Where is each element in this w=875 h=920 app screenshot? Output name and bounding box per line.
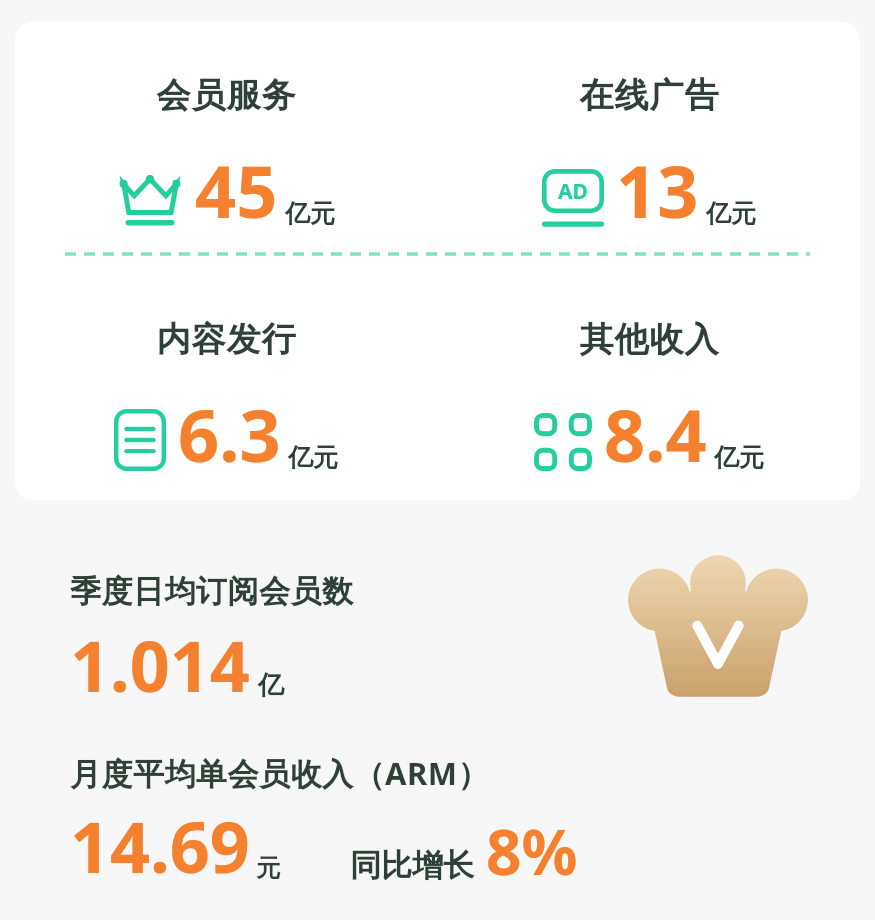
other: Other income	[534, 413, 592, 471]
other: Membership	[117, 175, 183, 227]
button[interactable]: 会员服务	[15, 22, 437, 242]
staticText: 8.4	[604, 385, 707, 483]
staticText: 在线广告	[579, 74, 719, 117]
staticText: 亿元	[288, 442, 338, 473]
other: Advertising	[542, 169, 604, 227]
other: Content	[114, 409, 166, 471]
staticText: 其他收入	[579, 318, 719, 361]
other: VIP crown	[628, 552, 808, 712]
staticText: 13	[616, 141, 699, 239]
staticText: 内容发行	[156, 318, 296, 361]
staticText: 14.69	[70, 798, 250, 893]
staticText: 亿元	[714, 442, 764, 473]
staticText: 季度日均订阅会员数	[70, 572, 354, 611]
button[interactable]: 其他收入	[437, 266, 860, 496]
button[interactable]: 内容发行	[15, 266, 437, 496]
staticText: 月度平均单会员收入（ARM）	[70, 752, 490, 794]
staticText: 亿元	[285, 198, 335, 229]
staticText: 亿	[258, 669, 284, 702]
staticText: 元	[256, 853, 280, 883]
staticText: 8%	[486, 809, 578, 893]
staticText: 会员服务	[156, 74, 296, 117]
staticText: 1.014	[70, 617, 250, 712]
staticText: 同比增长	[350, 846, 474, 885]
button[interactable]: 会员服务	[15, 22, 860, 500]
button[interactable]: 在线广告	[437, 22, 860, 242]
staticText: 6.3	[178, 385, 281, 483]
staticText: 亿元	[706, 198, 756, 229]
staticText: 45	[195, 141, 278, 239]
staticText: AD	[558, 177, 588, 206]
